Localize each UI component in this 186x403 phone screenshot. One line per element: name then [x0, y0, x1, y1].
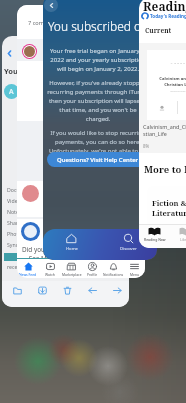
staticText: Library: [180, 237, 186, 242]
button[interactable]: Delete: [60, 283, 74, 297]
staticText: Today's Reading: [150, 13, 186, 19]
staticText: Notifications: [103, 272, 124, 276]
staticText: News Feed: [19, 272, 37, 276]
button[interactable]: Notes: [7, 208, 129, 219]
button[interactable]: Redo: [110, 283, 124, 297]
staticText: Your free trial began on January 2, 2022…: [47, 47, 149, 73]
button[interactable]: Documents: [7, 186, 129, 197]
staticText: Did you n: [22, 245, 51, 254]
other: Back: [5, 49, 14, 58]
button[interactable]: Reading Now: [139, 227, 170, 248]
staticText: Home: [66, 246, 78, 252]
staticText: Menu: [130, 272, 140, 276]
staticText: a n t h o l o g y: [147, 90, 186, 93]
button[interactable]: Videos: [7, 197, 129, 208]
button[interactable]: Shared: [7, 219, 129, 230]
staticText: Notes: [7, 208, 22, 215]
button[interactable]: Marketplace: [61, 259, 82, 278]
button[interactable]: Back: [43, 0, 157, 260]
staticText: You subscribed on: [48, 18, 149, 34]
staticText: Watch: [45, 272, 55, 276]
staticText: Profile: [87, 272, 98, 276]
staticText: … See M: [22, 254, 47, 263]
staticText: Reading Now: [144, 237, 166, 242]
staticText: If you would like to stop recurring paym…: [47, 129, 149, 164]
button[interactable]: New folder: [10, 283, 24, 297]
button[interactable]: Home: [43, 233, 100, 260]
staticText: recents: [7, 263, 25, 270]
staticText: Sync: [7, 241, 19, 248]
staticText: Fiction & Literature: [152, 198, 186, 218]
staticText: 8%: [143, 143, 150, 149]
staticText: A: [9, 87, 14, 97]
button[interactable]: A B O O K: [147, 50, 186, 120]
button[interactable]: Photos: [7, 230, 129, 241]
staticText: Marketplace: [62, 272, 82, 276]
button[interactable]: Fiction & Literature: [147, 186, 186, 246]
staticText: Apps: [7, 252, 20, 259]
button[interactable]: Undo: [85, 283, 99, 297]
staticText: Photos: [7, 230, 24, 237]
staticText: Shared: [7, 219, 25, 226]
staticText: 7 comments: [28, 19, 61, 27]
staticText: Documents: [7, 186, 35, 193]
button[interactable]: Notifications: [103, 259, 124, 278]
button[interactable]: News Feed: [17, 259, 39, 278]
staticText: A B O O K: [147, 61, 186, 64]
button[interactable]: Download: [35, 283, 49, 297]
button[interactable]: recents: [7, 263, 129, 274]
button[interactable]: 7 comments: [17, 5, 145, 278]
button[interactable]: Profile: [82, 259, 103, 278]
staticText: W: [43, 224, 49, 232]
button[interactable]: Apps: [7, 252, 129, 263]
button[interactable]: Discover: [100, 233, 157, 260]
staticText: Your files: [4, 66, 39, 76]
staticText: Calvinism_and_Christian_Life: [143, 123, 186, 138]
staticText: Sp: [43, 232, 49, 238]
button[interactable]: Watch: [39, 259, 61, 278]
staticText: Current: [145, 26, 172, 35]
button[interactable]: Back: [2, 36, 129, 307]
button[interactable]: Sync: [7, 241, 129, 252]
button[interactable]: Menu: [124, 259, 145, 278]
button[interactable]: A B O O K: [139, 0, 186, 248]
staticText: Questions? Visit Help Center: [57, 156, 139, 164]
button[interactable]: Back: [44, 0, 58, 12]
staticText: However, if you've already stopped recur…: [47, 79, 149, 123]
button[interactable]: Questions? Visit Help Center: [47, 152, 149, 167]
staticText: Calvinism and the Christian Life: [147, 76, 186, 88]
staticText: More to Explore: [144, 163, 186, 176]
button[interactable]: Library: [170, 227, 186, 248]
staticText: Videos: [7, 197, 24, 204]
staticText: Discover: [120, 246, 137, 252]
staticText: Reading: [143, 0, 186, 14]
